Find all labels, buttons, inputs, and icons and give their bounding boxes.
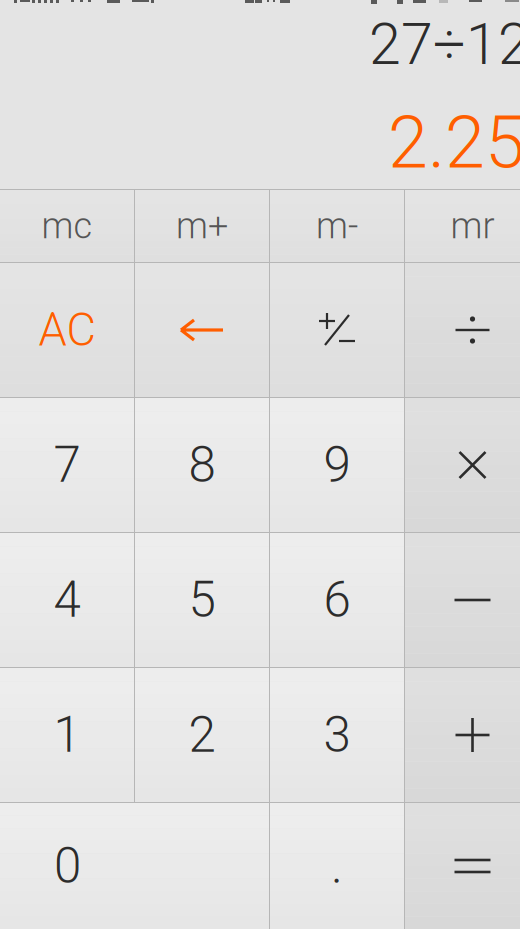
staticText: 0 xyxy=(54,837,81,895)
staticText: 8 xyxy=(188,436,215,494)
button[interactable]: mr xyxy=(405,190,520,262)
staticText: mr xyxy=(450,205,494,247)
button[interactable]: m- xyxy=(270,190,405,262)
staticText: 5 xyxy=(188,571,215,629)
button[interactable]: 1 xyxy=(0,668,135,802)
staticText: 2.25 xyxy=(388,101,520,185)
button[interactable]: mc xyxy=(0,190,135,262)
button[interactable]: 0 xyxy=(0,803,270,929)
staticText: m- xyxy=(316,205,358,247)
button[interactable]: 7 xyxy=(0,398,135,532)
button[interactable]: 4 xyxy=(0,533,135,667)
staticText: 4 xyxy=(53,571,80,629)
button[interactable]: 5 xyxy=(135,533,270,667)
staticText: m+ xyxy=(176,205,228,247)
button[interactable]: Divide xyxy=(405,263,520,397)
button[interactable]: Equals xyxy=(405,803,520,929)
button[interactable]: 9 xyxy=(270,398,405,532)
button[interactable]: 6 xyxy=(270,533,405,667)
staticText: 6 xyxy=(323,571,350,629)
staticText: mc xyxy=(41,205,92,247)
staticText: . xyxy=(331,837,343,895)
button[interactable]: AC xyxy=(0,263,135,397)
staticText: 9 xyxy=(323,436,350,494)
button[interactable]: 3 xyxy=(270,668,405,802)
button[interactable]: Plus xyxy=(405,668,520,802)
staticText: 1 xyxy=(53,706,80,764)
button[interactable]: 2 xyxy=(135,668,270,802)
staticText: AC xyxy=(38,303,95,356)
button[interactable]: Plus minus xyxy=(270,263,405,397)
staticText: 2 xyxy=(188,706,215,764)
staticText: 3 xyxy=(323,706,350,764)
button[interactable]: m+ xyxy=(135,190,270,262)
staticText: 7 xyxy=(53,436,80,494)
staticText: 27÷12 xyxy=(369,11,520,78)
button[interactable]: Multiply xyxy=(405,398,520,532)
button[interactable]: . xyxy=(270,803,405,929)
button[interactable]: 8 xyxy=(135,398,270,532)
button[interactable]: Minus xyxy=(405,533,520,667)
button[interactable]: Delete xyxy=(135,263,270,397)
